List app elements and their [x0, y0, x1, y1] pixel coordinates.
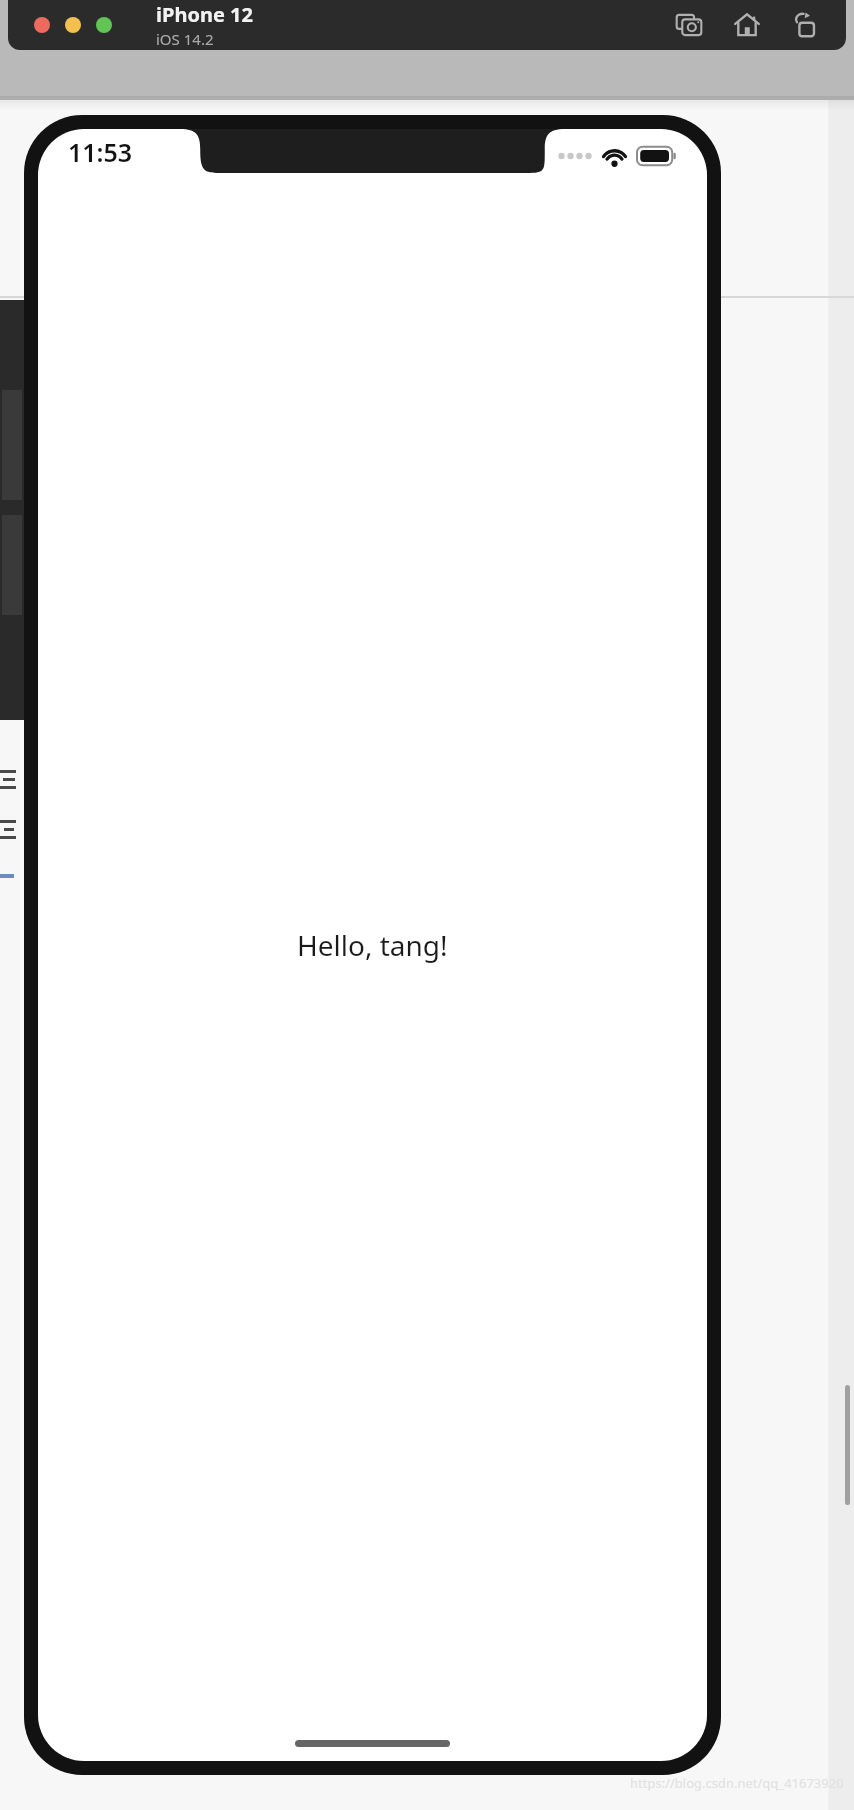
button[interactable]: Maximise — [96, 17, 112, 33]
button[interactable]: Rotate — [788, 8, 822, 42]
staticText: 11:53 — [68, 135, 133, 169]
staticText: Hello, tang! — [297, 926, 448, 964]
button[interactable]: Minimise — [65, 17, 81, 33]
button[interactable]: Close — [34, 17, 50, 33]
button[interactable]: Home indicator — [295, 1740, 450, 1747]
staticText: https://blog.csdn.net/qq_41673920 — [630, 1774, 844, 1792]
staticText: iPhone 12 — [156, 1, 253, 28]
button[interactable]: Screenshot — [672, 8, 706, 42]
staticText: iOS 14.2 — [156, 29, 214, 49]
button[interactable]: Home — [730, 8, 764, 42]
